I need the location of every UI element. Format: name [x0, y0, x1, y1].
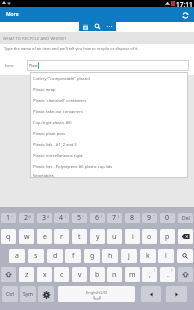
staticText: j	[128, 251, 130, 261]
button[interactable]: l	[158, 249, 174, 263]
button[interactable]: Plastic plant pots	[30, 128, 188, 139]
staticText: Item:	[5, 63, 14, 68]
button[interactable]: i	[125, 229, 140, 244]
button[interactable]: Sym	[20, 286, 36, 302]
button[interactable]: s	[28, 249, 44, 263]
button[interactable]: u	[107, 229, 122, 244]
button[interactable]: t	[72, 229, 87, 244]
staticText: 1	[6, 213, 11, 223]
button[interactable]: 2	[19, 213, 34, 223]
staticText: Plast	[29, 63, 38, 68]
staticText: Sym	[23, 291, 33, 298]
button[interactable]: Refresh	[180, 10, 190, 20]
button[interactable]: Plastic 'clamshell' containers	[30, 95, 188, 106]
staticText: '	[172, 214, 173, 219]
staticText: 2	[24, 213, 29, 223]
button[interactable]: y	[90, 229, 105, 244]
button[interactable]: Plastic take-out containers	[30, 106, 188, 117]
button[interactable]: 8	[125, 213, 140, 223]
button[interactable]: Del	[178, 213, 193, 223]
staticText: Plastic plant pots	[33, 131, 65, 136]
button[interactable]: .	[160, 267, 175, 282]
button[interactable]: a	[9, 249, 25, 263]
staticText: WHAT TO RECYCLE AND WHERE?	[3, 36, 67, 41]
staticText: x	[43, 270, 47, 280]
button[interactable]: w	[19, 229, 34, 244]
button[interactable]: g	[84, 249, 100, 263]
button[interactable]: p	[160, 229, 175, 244]
button[interactable]: x	[37, 267, 52, 282]
staticText: -	[136, 214, 138, 219]
button[interactable]: 4	[54, 213, 69, 223]
button[interactable]: back	[178, 229, 193, 244]
button[interactable]: ,	[142, 267, 157, 282]
staticText: ,	[149, 270, 151, 280]
button[interactable]: k	[140, 249, 156, 263]
button[interactable]: gear	[38, 286, 54, 302]
button[interactable]: left	[141, 286, 161, 302]
button[interactable]: d	[47, 249, 63, 263]
button[interactable]: shift	[178, 267, 193, 282]
button[interactable]: 3	[37, 213, 52, 223]
button[interactable]: 5	[72, 213, 87, 223]
button[interactable]: f	[65, 249, 81, 263]
button[interactable]: Plastic wrap	[30, 84, 188, 95]
staticText: o	[147, 232, 152, 242]
button[interactable]: Vegetables	[30, 172, 188, 178]
button[interactable]: v	[72, 267, 87, 282]
staticText: .	[167, 270, 169, 280]
staticText: !	[154, 268, 155, 273]
button[interactable]: n	[107, 267, 122, 282]
button[interactable]: 7	[107, 213, 122, 223]
button[interactable]: Plastic miscellaneous rigid	[30, 150, 188, 161]
staticText: 3	[42, 213, 47, 223]
staticText: u	[112, 232, 117, 242]
button[interactable]: Plastic lids - #1, 2 and 5	[30, 139, 188, 150]
button[interactable]: r	[54, 229, 69, 244]
staticText: ~	[11, 214, 14, 219]
button[interactable]: Cup (rigid plastic #6)	[30, 117, 188, 128]
button[interactable]: h	[102, 249, 118, 263]
staticText: Del	[182, 215, 190, 222]
staticText: 9	[147, 213, 152, 223]
staticText: t	[78, 232, 81, 242]
staticText: q	[6, 232, 11, 242]
button[interactable]: Plastic lids - Polystyrene #6 plastic cu…	[30, 161, 188, 172]
button[interactable]: z	[19, 267, 34, 282]
staticText: Cutlery ("compostable" plastic)	[33, 76, 91, 81]
button[interactable]: 0	[160, 213, 175, 223]
staticText: l	[165, 251, 167, 261]
staticText: 0	[165, 213, 170, 223]
staticText: h	[108, 251, 113, 261]
button[interactable]: Search	[92, 22, 103, 31]
button[interactable]: 6	[90, 213, 105, 223]
button[interactable]: Plast	[27, 60, 189, 71]
button[interactable]: shift	[1, 267, 16, 282]
button[interactable]: 1	[1, 213, 16, 223]
button[interactable]: 9	[142, 213, 157, 223]
button[interactable]: b	[90, 267, 105, 282]
staticText: "	[153, 214, 155, 219]
button[interactable]: j	[121, 249, 137, 263]
button[interactable]: m	[125, 267, 140, 282]
button[interactable]: Cutlery ("compostable" plastic)	[30, 73, 188, 84]
button[interactable]: Ctrl	[2, 286, 18, 302]
staticText: r	[60, 232, 63, 242]
staticText: Cup (rigid plastic #6)	[33, 120, 72, 125]
button[interactable]: More options	[104, 22, 115, 31]
button[interactable]: e	[37, 229, 52, 244]
button[interactable]: right	[166, 286, 187, 302]
staticText: )	[118, 214, 120, 219]
staticText: v	[78, 270, 82, 280]
staticText: @	[28, 214, 32, 219]
staticText: p	[165, 232, 170, 242]
button[interactable]: English(US)	[58, 286, 135, 302]
button[interactable]: c	[54, 267, 69, 282]
button[interactable]: o	[142, 229, 157, 244]
button[interactable]: List	[80, 22, 91, 31]
staticText: #	[47, 214, 50, 219]
staticText: Type the name of an item and we'll tell …	[4, 46, 139, 51]
button[interactable]: search	[177, 249, 193, 263]
button[interactable]: q	[1, 229, 16, 244]
staticText: d	[53, 251, 58, 261]
